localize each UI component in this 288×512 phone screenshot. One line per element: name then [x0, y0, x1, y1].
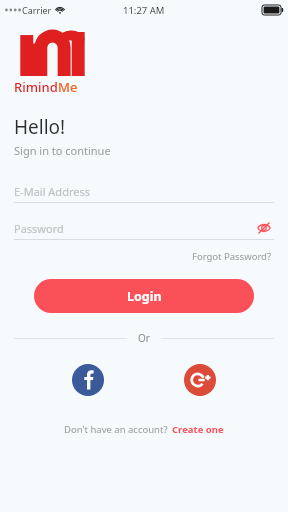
button[interactable]: Sign in with Facebook — [72, 364, 104, 396]
staticText: Or — [138, 331, 150, 345]
staticText: Carrier — [22, 4, 52, 16]
staticText: Don't have an account? — [64, 423, 168, 436]
staticText: Login — [127, 288, 162, 305]
button[interactable]: Password — [14, 217, 274, 240]
button[interactable]: Forgot Password? — [190, 248, 274, 265]
staticText: Forgot Password? — [192, 250, 272, 263]
staticText: Hello! — [14, 114, 66, 140]
button[interactable]: Login — [34, 279, 254, 313]
button[interactable]: Show password — [254, 218, 274, 238]
staticText: Create one — [172, 423, 224, 436]
staticText: 11:27 AM — [123, 4, 165, 17]
button[interactable]: Sign in with Google Plus — [184, 364, 216, 396]
staticText: E-Mail Address — [14, 184, 90, 199]
button[interactable]: E-Mail Address — [14, 180, 274, 203]
staticText: Sign in to continue — [14, 143, 111, 158]
staticText: Me — [58, 78, 78, 96]
staticText: Password — [14, 221, 64, 236]
button[interactable]: Create one — [172, 423, 224, 436]
staticText: Rimind — [14, 78, 58, 96]
